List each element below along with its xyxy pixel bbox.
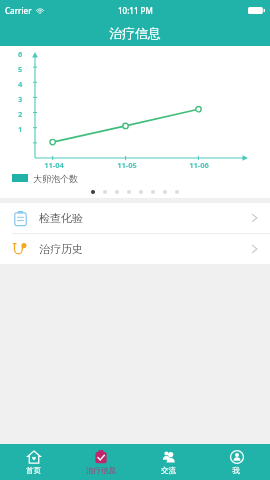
staticText: 4 (18, 79, 23, 89)
staticText: Carrier (5, 5, 32, 16)
button[interactable]: 治疗历史 (0, 234, 270, 264)
staticText: 1 (18, 124, 23, 134)
staticText: 11-06 (183, 160, 215, 170)
staticText: 2 (18, 109, 23, 119)
staticText: 6 (18, 49, 23, 59)
button[interactable]: Treatment Info (67, 444, 134, 480)
staticText: 5 (18, 64, 23, 74)
staticText: 我 (232, 466, 240, 475)
staticText: 10:11 PM (118, 5, 153, 16)
staticText: 11-04 (38, 160, 70, 170)
staticText: 大卵泡个数 (33, 173, 78, 184)
button[interactable]: Profile (202, 444, 270, 480)
staticText: 治疗信息 (109, 25, 161, 41)
staticText: 首页 (26, 466, 41, 475)
staticText: 检查化验 (39, 211, 83, 225)
staticText: 3 (18, 94, 23, 104)
staticText: 11-05 (111, 160, 143, 170)
button[interactable]: 检查化验 (0, 203, 270, 233)
staticText: 治疗历史 (39, 242, 83, 256)
button[interactable]: Community (134, 444, 202, 480)
staticText: 交流 (161, 466, 176, 475)
button[interactable]: Home (0, 444, 67, 480)
staticText: 治疗信息 (86, 466, 116, 475)
